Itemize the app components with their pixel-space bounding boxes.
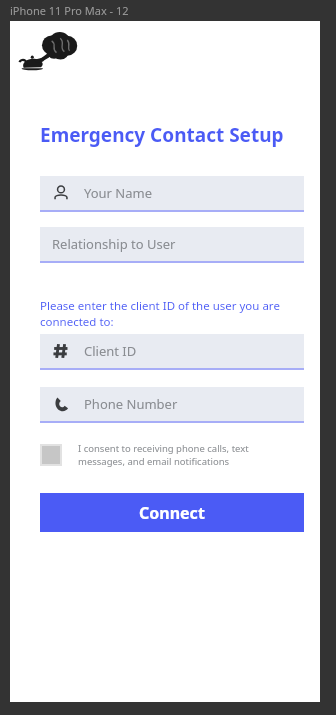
staticText: I consent to receiving phone calls, text…	[78, 442, 290, 468]
button[interactable]: Relationship to User	[40, 227, 304, 263]
staticText: Connect	[139, 502, 205, 524]
staticText: Phone Number	[84, 395, 178, 413]
button[interactable]: Phone Number	[40, 387, 304, 423]
staticText: Client ID	[84, 342, 137, 360]
staticText: Your Name	[84, 184, 153, 202]
staticText: Emergency Contact Setup	[40, 122, 284, 148]
button[interactable]: I consent to receiving phone calls, text…	[40, 442, 290, 468]
staticText: Please enter the client ID of the user y…	[40, 298, 305, 329]
staticText: Relationship to User	[52, 235, 176, 253]
staticText: iPhone 11 Pro Max - 12	[10, 3, 129, 18]
button[interactable]: Your Name	[40, 176, 304, 212]
button[interactable]: Client ID	[40, 334, 304, 370]
button[interactable]: Connect	[40, 493, 304, 532]
